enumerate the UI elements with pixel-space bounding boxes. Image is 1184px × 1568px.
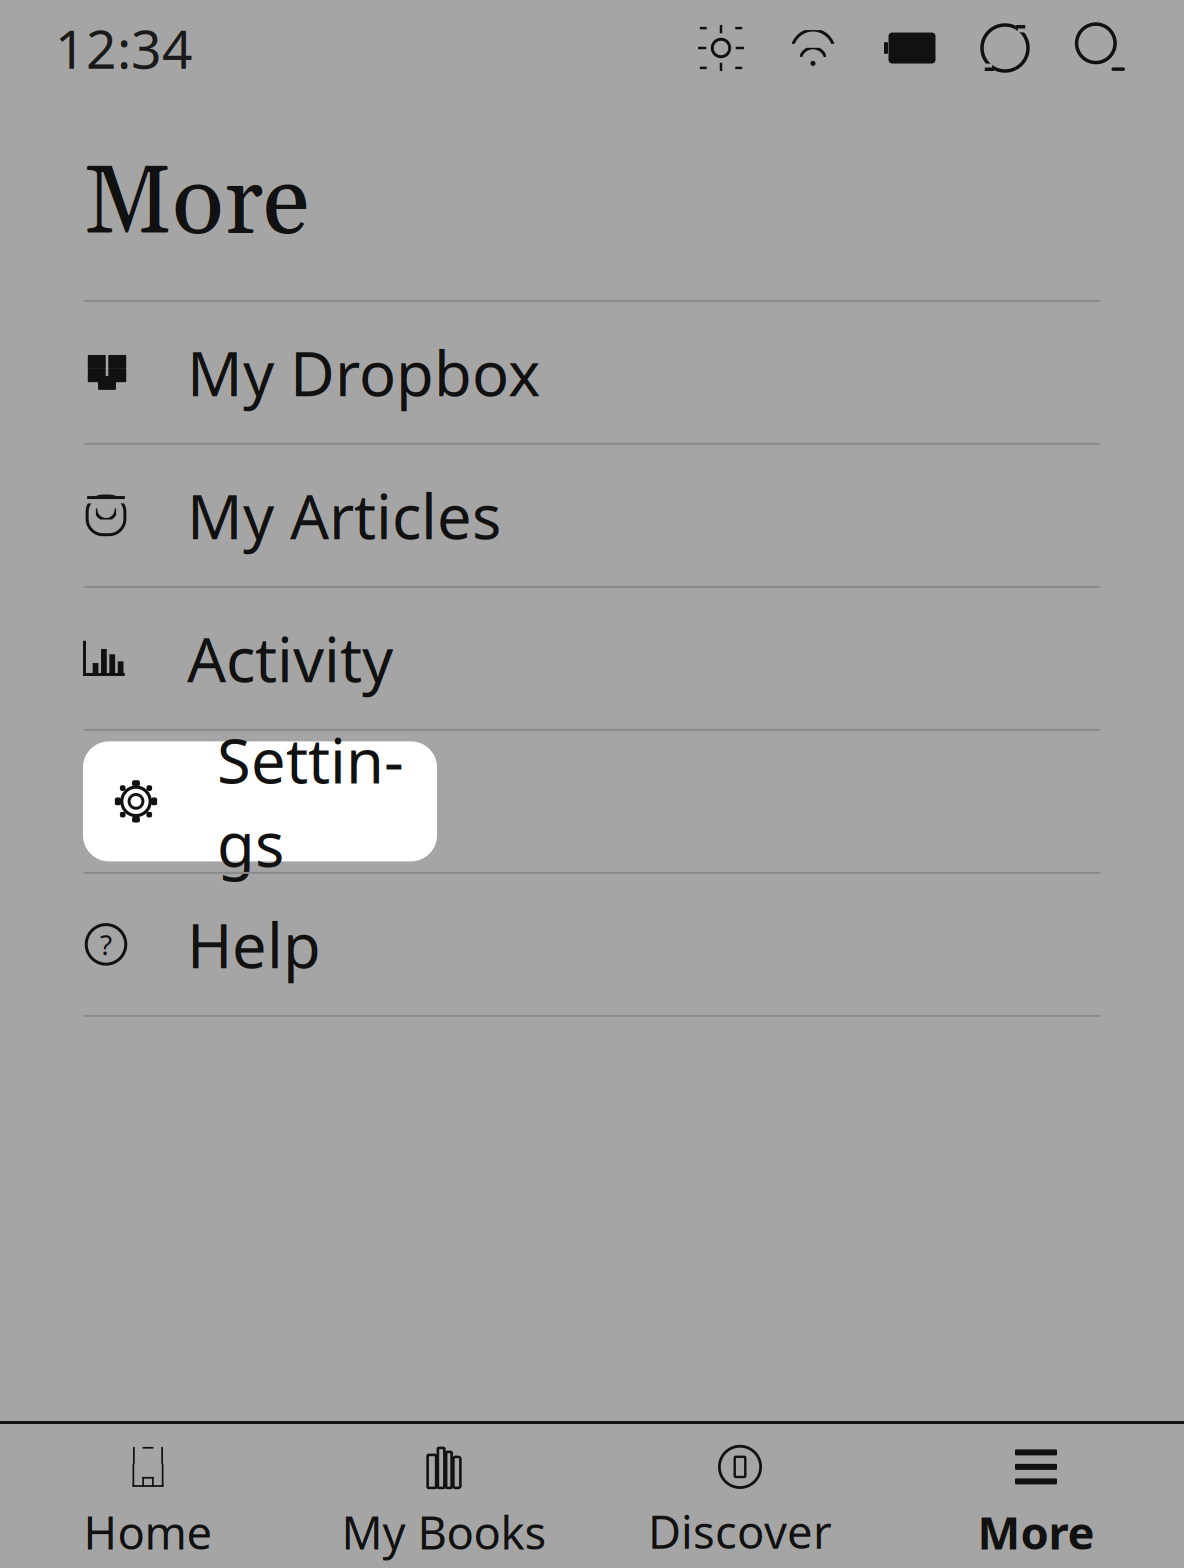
staticText: My Books (341, 1502, 546, 1562)
button[interactable]: Settings (0, 731, 1184, 872)
button[interactable]: Home (0, 1440, 296, 1568)
staticText: Settings (217, 718, 404, 885)
button[interactable]: Discover (592, 1440, 888, 1568)
staticText: Discover (648, 1501, 832, 1561)
staticText: Help (187, 903, 321, 986)
staticText: 12:34 (55, 13, 193, 83)
staticText: ? (100, 926, 112, 963)
staticText: More (977, 1502, 1094, 1562)
button[interactable]: ? (0, 874, 1184, 1015)
staticText: Home (83, 1502, 212, 1562)
button[interactable]: More (888, 1440, 1184, 1568)
button[interactable]: My Dropbox (0, 302, 1184, 443)
staticText: My Articles (187, 474, 501, 557)
staticText: Activity (187, 617, 393, 700)
button[interactable]: My Books (296, 1440, 592, 1568)
button[interactable]: My Articles (0, 445, 1184, 586)
staticText: My Dropbox (187, 331, 540, 414)
staticText: More (83, 144, 309, 266)
button[interactable]: Activity (0, 588, 1184, 729)
